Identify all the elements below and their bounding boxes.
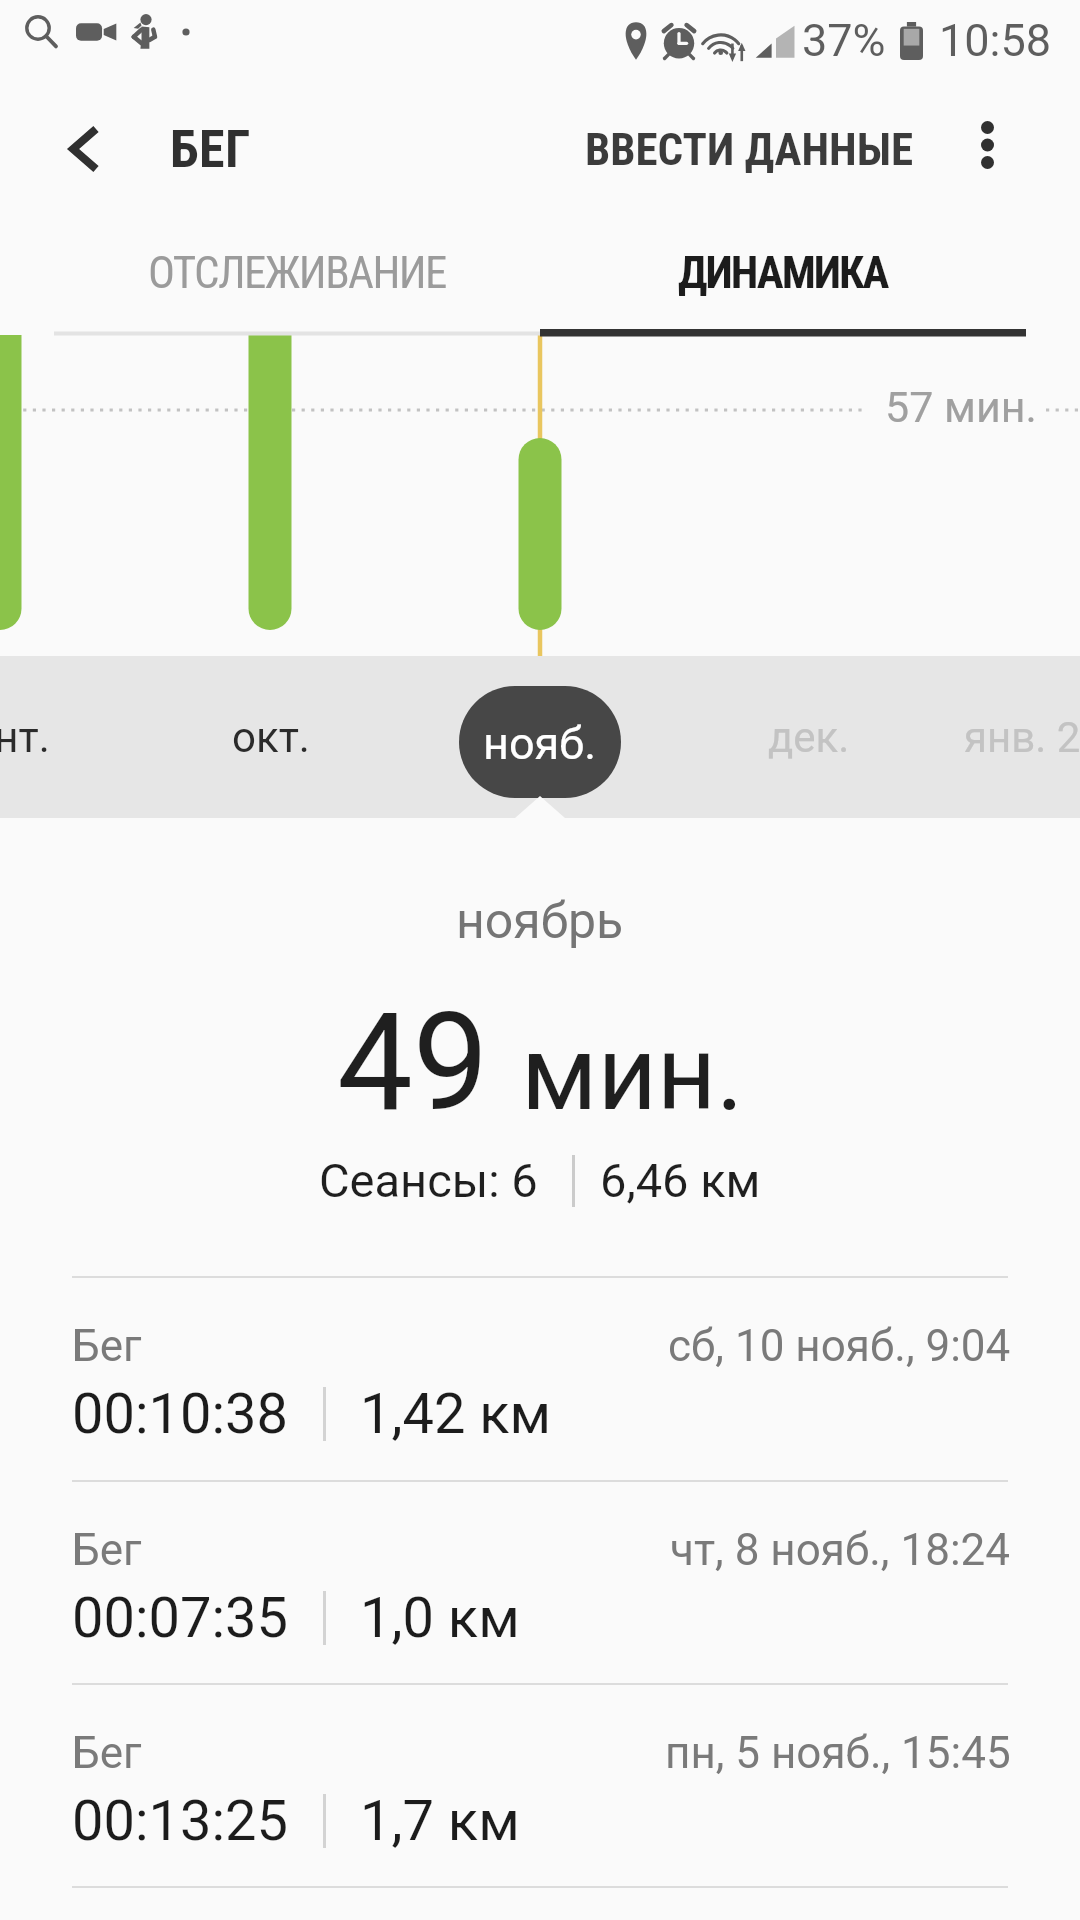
staticText: чт, 8 нояб., 18:24 bbox=[670, 1524, 1011, 1576]
staticText: 57 мин. bbox=[885, 382, 1037, 432]
staticText: 6,46 км bbox=[600, 1153, 761, 1208]
staticText: 1,0 км bbox=[360, 1585, 520, 1651]
staticText: 00:07:35 bbox=[72, 1585, 288, 1651]
staticText: янв. 2019 bbox=[964, 713, 1080, 762]
staticText: ОТСЛЕЖИВАНИЕ bbox=[148, 246, 446, 299]
button[interactable]: Бег bbox=[0, 1276, 1080, 1479]
staticText: сент. bbox=[0, 713, 50, 762]
staticText: 00:10:38 bbox=[72, 1381, 288, 1447]
staticText: Бег bbox=[72, 1524, 142, 1576]
staticText: 10:58 bbox=[939, 14, 1052, 67]
staticText: БЕГ bbox=[170, 119, 251, 180]
button[interactable]: ДИНАМИКА bbox=[540, 213, 1026, 332]
button[interactable]: янв. 2019 bbox=[964, 656, 1080, 818]
button[interactable]: Back bbox=[30, 88, 134, 210]
staticText: 00:13:25 bbox=[72, 1788, 288, 1854]
button[interactable]: сент. bbox=[0, 656, 160, 818]
staticText: окт. bbox=[232, 713, 310, 762]
button[interactable]: More options bbox=[927, 88, 1047, 210]
staticText: ДИНАМИКА bbox=[678, 246, 888, 299]
staticText: сб, 10 нояб., 9:04 bbox=[668, 1320, 1011, 1372]
staticText: дек. bbox=[768, 713, 850, 762]
staticText: 37% bbox=[802, 14, 886, 67]
staticText: 49 bbox=[337, 984, 489, 1142]
button[interactable]: БЕГ bbox=[146, 88, 275, 210]
staticText: Бег bbox=[72, 1727, 142, 1779]
button[interactable]: нояб. bbox=[459, 686, 621, 798]
staticText: мин. bbox=[521, 1013, 744, 1134]
button[interactable]: окт. bbox=[111, 656, 431, 818]
staticText: ВВЕСТИ ДАННЫЕ bbox=[585, 123, 913, 176]
button[interactable]: дек. bbox=[649, 656, 969, 818]
button[interactable]: Бег bbox=[0, 1683, 1080, 1886]
staticText: Сеансы: 6 bbox=[319, 1153, 538, 1208]
button[interactable]: ОТСЛЕЖИВАНИЕ bbox=[54, 213, 540, 332]
button[interactable]: ВВЕСТИ ДАННЫЕ bbox=[565, 88, 933, 210]
staticText: 1,42 км bbox=[360, 1381, 552, 1447]
staticText: ноябрь bbox=[456, 892, 624, 951]
button[interactable]: Бег bbox=[0, 1480, 1080, 1683]
staticText: 1,7 км bbox=[360, 1788, 520, 1854]
staticText: Бег bbox=[72, 1320, 142, 1372]
staticText: пн, 5 нояб., 15:45 bbox=[665, 1727, 1011, 1779]
staticText: нояб. bbox=[483, 717, 597, 770]
